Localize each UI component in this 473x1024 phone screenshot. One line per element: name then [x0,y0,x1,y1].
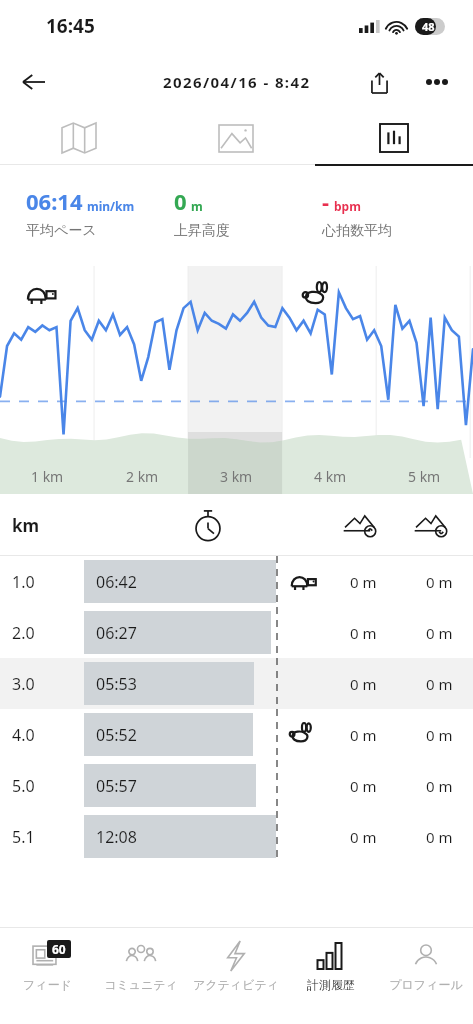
button[interactable]: 60 [0,928,94,1024]
button[interactable]: プロフィール [378,928,473,1024]
staticText: 60 [52,941,66,957]
staticText: 2 km [126,467,159,486]
staticText: 0 m [350,827,377,847]
staticText: 48 [422,19,435,34]
staticText: 05:57 [96,775,137,797]
button[interactable]: More options [415,60,459,104]
staticText: bpm [334,198,361,214]
staticText: 0 m [350,725,377,745]
button[interactable]: コミュニティ [94,928,188,1024]
staticText: 0 m [426,827,453,847]
button[interactable]: 1.0 [0,556,473,607]
staticText: 2026/04/16 - 8:42 [163,72,311,92]
staticText: 0 m [426,674,453,694]
staticText: 0 m [426,623,453,643]
staticText: 1.0 [12,571,35,593]
staticText: 0 m [350,776,377,796]
staticText: 4.0 [12,724,35,746]
staticText: コミュニティ [104,977,178,992]
staticText: 5 km [408,467,441,486]
staticText: 2.0 [12,622,35,644]
staticText: 0 m [426,776,453,796]
button[interactable]: 3.0 [0,658,473,709]
button[interactable]: Share [357,60,401,104]
staticText: 0 [174,186,187,216]
staticText: 5.0 [12,775,35,797]
staticText: プロフィール [389,977,463,992]
staticText: - [322,186,330,216]
staticText: 06:42 [96,571,137,593]
staticText: km [12,514,40,537]
button[interactable]: 5.0 [0,760,473,811]
button[interactable]: アクティビティ [188,928,283,1024]
staticText: 計測履歴 [307,977,355,992]
button[interactable]: 4.0 [0,709,473,760]
button[interactable]: 2.0 [0,607,473,658]
staticText: 1 km [31,467,64,486]
staticText: 16:45 [46,13,95,39]
staticText: 5.1 [12,826,35,848]
staticText: 05:52 [96,724,137,746]
staticText: 06:27 [96,622,137,644]
staticText: 0 m [426,572,453,592]
staticText: 心拍数平均 [322,222,392,240]
staticText: 05:53 [96,673,137,695]
staticText: 0 m [426,725,453,745]
button[interactable]: 計測履歴 [283,928,378,1024]
staticText: フィード [23,977,72,992]
staticText: 平均ペース [26,222,97,240]
staticText: アクティビティ [193,977,279,992]
button[interactable]: 5.1 [0,811,473,862]
staticText: 3 km [220,467,253,486]
staticText: 上昇高度 [174,222,230,240]
staticText: 4 km [314,467,347,486]
button[interactable]: Photos tab [157,112,315,164]
staticText: min/km [87,198,135,214]
staticText: 0 m [350,674,377,694]
staticText: 06:14 [26,186,83,216]
staticText: 0 m [350,572,377,592]
staticText: 12:08 [96,826,137,848]
staticText: 3.0 [12,673,35,695]
button[interactable]: Map tab [0,112,157,164]
button[interactable]: Charts tab [315,112,473,164]
staticText: 0 m [350,623,377,643]
button[interactable]: Back [12,60,56,104]
staticText: m [191,198,203,214]
